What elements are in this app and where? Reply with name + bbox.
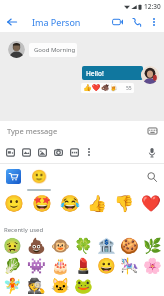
staticText: 😂 <box>60 194 80 213</box>
button[interactable]: Emoji <box>26 164 52 189</box>
staticText: ❤️ <box>141 194 161 213</box>
staticText: 👎 <box>114 194 134 213</box>
button[interactable]: Add photo <box>2 141 18 163</box>
staticText: 👍 <box>87 194 107 213</box>
button[interactable]: Sticker <box>118 236 141 256</box>
staticText: Type message <box>7 126 58 136</box>
staticText: Hello! <box>86 69 104 78</box>
button[interactable]: Sticker <box>72 236 95 256</box>
button[interactable]: Sticker <box>24 256 48 276</box>
button[interactable]: Back <box>0 12 24 32</box>
staticText: 🥬 <box>3 257 22 275</box>
button[interactable]: Send image <box>18 141 34 163</box>
button[interactable]: Call <box>127 12 146 32</box>
staticText: 🎠 <box>120 257 139 275</box>
button[interactable]: Emoji <box>137 193 164 214</box>
staticText: 🤩 <box>32 194 52 213</box>
button[interactable]: Sticker <box>24 276 48 296</box>
button[interactable]: Sticker <box>0 236 24 256</box>
button[interactable]: Sticker <box>0 276 24 296</box>
staticText: 💩 <box>27 237 46 255</box>
button[interactable]: More options <box>146 12 162 32</box>
button[interactable]: Sticker <box>48 236 72 256</box>
button[interactable]: Sticker <box>48 276 72 296</box>
button[interactable]: Emoji <box>0 193 28 214</box>
button[interactable]: Keyboard <box>143 122 161 140</box>
button[interactable]: Sticker <box>95 236 118 256</box>
button[interactable]: Emoji <box>83 193 110 214</box>
button[interactable]: Sticker <box>141 256 164 276</box>
staticText: 😀 <box>97 257 116 275</box>
staticText: 🧚 <box>3 277 22 295</box>
button[interactable]: Sticker <box>24 236 48 256</box>
button[interactable]: Sticker <box>141 236 164 256</box>
staticText: 🌿 <box>143 237 162 255</box>
button[interactable]: Sticker <box>95 256 118 276</box>
button[interactable]: Camera <box>50 141 66 163</box>
staticText: 👍❤️🐗🍺 <box>83 84 118 92</box>
staticText: 🍀 <box>74 237 93 255</box>
staticText: 🍪 <box>120 237 139 255</box>
button[interactable]: Search <box>140 164 164 189</box>
button[interactable]: More <box>82 141 96 163</box>
staticText: Recently used <box>4 226 44 234</box>
button[interactable]: Sticker <box>72 276 95 296</box>
staticText: 🙂 <box>4 194 24 213</box>
staticText: 🐱 <box>51 277 70 295</box>
button[interactable]: Emoji <box>110 193 137 214</box>
button[interactable]: Sticker <box>0 256 24 276</box>
button[interactable]: Voice message <box>142 141 162 163</box>
button[interactable]: Sticker <box>118 256 141 276</box>
button[interactable]: Emoji <box>28 193 56 214</box>
button[interactable]: Emoji <box>56 193 83 214</box>
button[interactable]: Gallery <box>34 141 50 163</box>
button[interactable]: Video call <box>108 12 127 32</box>
staticText: 🤢 <box>3 237 22 255</box>
staticText: 🎂 <box>51 257 70 275</box>
staticText: 👾 <box>27 257 46 275</box>
button[interactable]: GIF <box>66 141 82 163</box>
button[interactable]: Stickers <box>0 164 26 189</box>
staticText: 🌸 <box>143 257 162 275</box>
button[interactable]: Sticker <box>72 256 95 276</box>
staticText: Ima Person <box>32 16 81 28</box>
staticText: 🐸 <box>74 277 93 295</box>
button[interactable]: Sticker <box>48 256 72 276</box>
staticText: 🙂 <box>31 169 48 184</box>
staticText: 55 <box>126 85 132 92</box>
staticText: 🕵️ <box>27 277 46 295</box>
staticText: 🏦 <box>97 237 116 255</box>
staticText: Good Morning <box>34 46 76 54</box>
staticText: 💄 <box>74 257 93 275</box>
staticText: 12:30 <box>144 2 161 11</box>
staticText: 🐵 <box>51 237 70 255</box>
